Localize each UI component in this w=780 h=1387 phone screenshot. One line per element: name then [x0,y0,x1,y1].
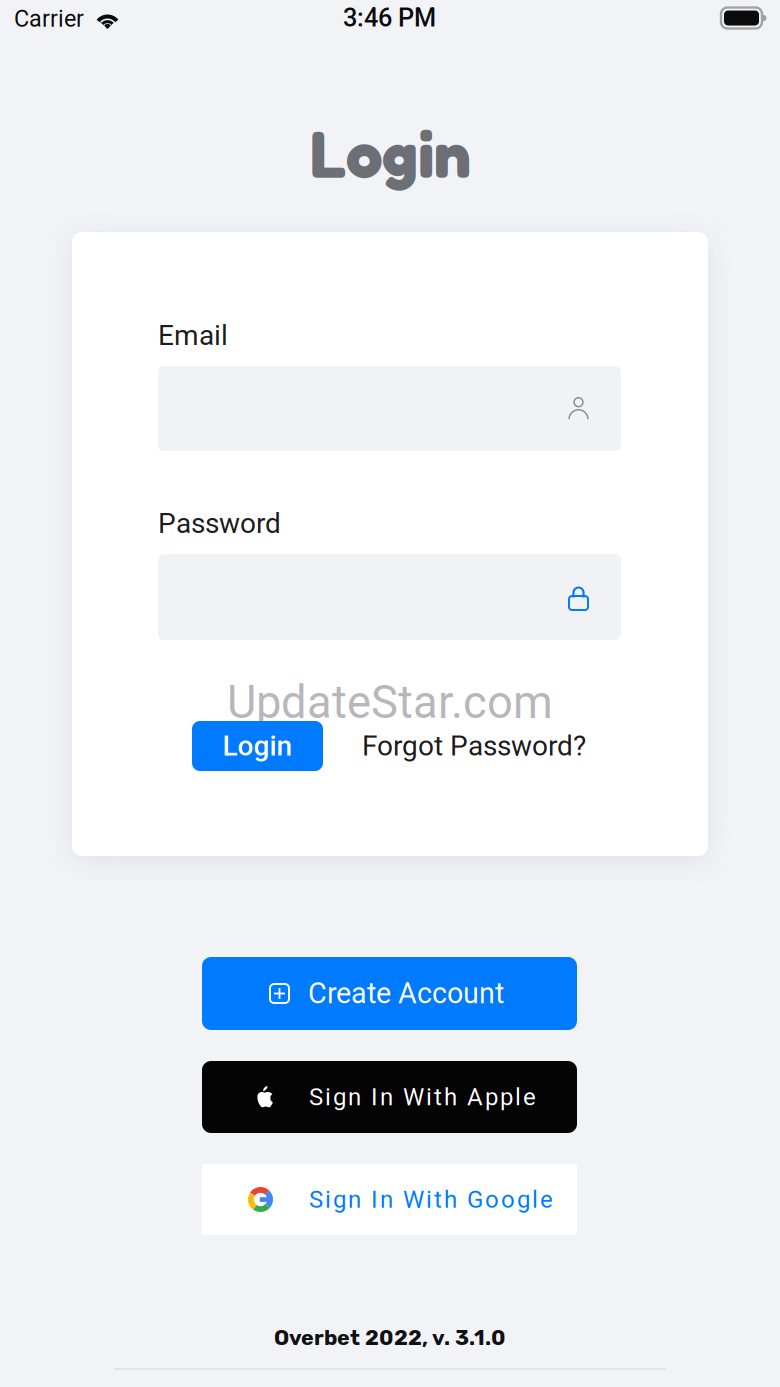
staticText: UpdateStar.com [227,676,553,729]
button[interactable]: Forgot Password? [362,721,592,771]
button[interactable]: Login [192,721,323,771]
staticText: Overbet 2022, v. 3.1.0 [274,1325,506,1350]
staticText: 3:46 PM [343,3,436,33]
staticText: Login [309,113,471,192]
staticText: Carrier [14,5,84,32]
button[interactable]: S i g n I n W i t h A p p l e [202,1061,577,1133]
staticText: S i g n I n W i t h G o o g l e [309,1185,553,1213]
staticText: Email [158,319,228,352]
button[interactable]: S i g n I n W i t h G o o g l e [202,1164,577,1235]
staticText: Create Account [308,977,504,1010]
staticText: Password [158,507,281,540]
staticText: Login [222,730,292,762]
button[interactable]: Create Account [202,957,577,1030]
staticText: Forgot Password? [362,730,586,762]
staticText: S i g n I n W i t h A p p l e [309,1083,536,1111]
